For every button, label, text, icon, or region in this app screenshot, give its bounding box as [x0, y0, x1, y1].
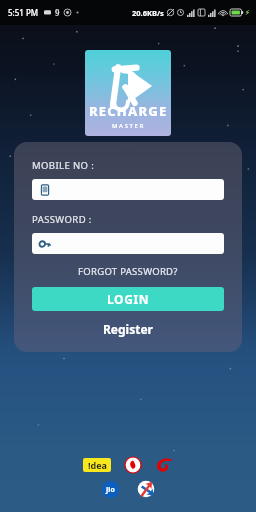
- staticText: 9: [55, 7, 60, 18]
- staticText: MASTER: [112, 122, 145, 130]
- button[interactable]: Register: [32, 321, 224, 337]
- staticText: MOBILE NO :: [32, 159, 95, 172]
- staticText: Jio: [106, 485, 115, 495]
- staticText: FORGOT PASSWORD?: [78, 265, 178, 278]
- button[interactable]: FORGOT PASSWORD?: [32, 265, 224, 278]
- button[interactable]: [32, 179, 224, 200]
- button[interactable]: Idea: [83, 458, 111, 472]
- staticText: RECHARGE: [89, 102, 168, 120]
- button[interactable]: LOGIN: [32, 287, 224, 311]
- button[interactable]: Jio: [102, 481, 119, 498]
- button[interactable]: [32, 233, 224, 254]
- staticText: !dea: [88, 459, 107, 471]
- staticText: ⚡: [245, 9, 250, 17]
- staticText: 5:51 PM: [8, 7, 39, 18]
- staticText: LOGIN: [107, 291, 150, 307]
- staticText: 20.6KB/s: [132, 8, 164, 18]
- staticText: PASSWORD :: [32, 213, 92, 226]
- staticText: Register: [103, 321, 153, 337]
- button[interactable]: Airtel: [155, 456, 173, 474]
- button[interactable]: Vodafone: [125, 457, 141, 473]
- button[interactable]: Recharge: [137, 480, 155, 498]
